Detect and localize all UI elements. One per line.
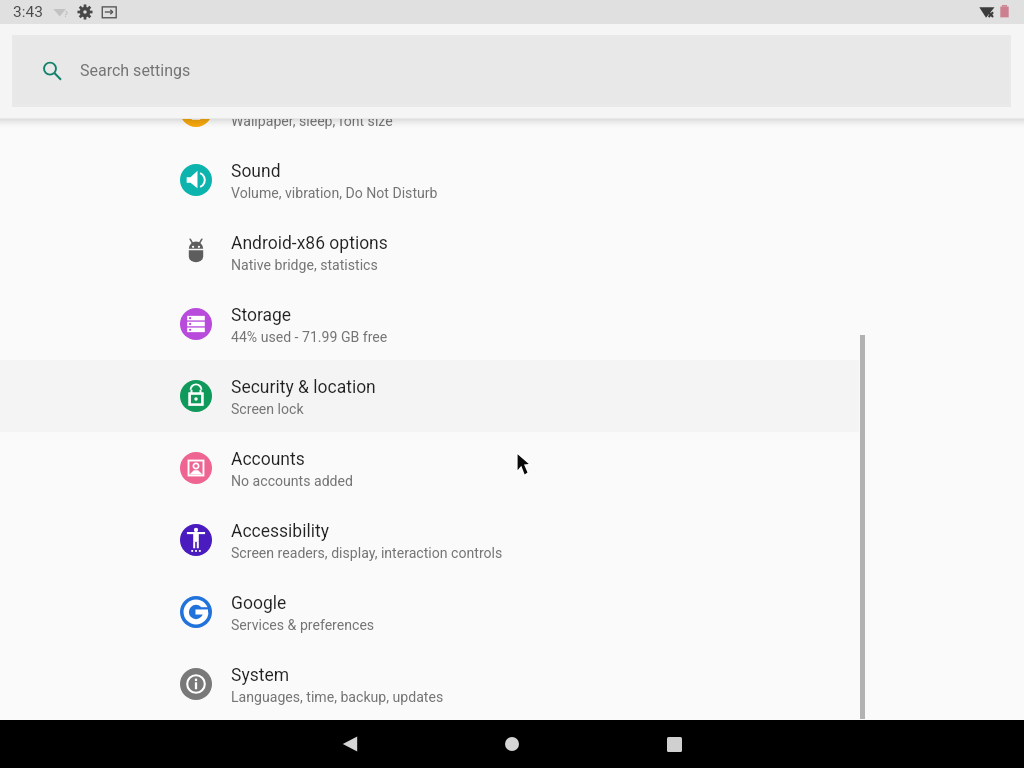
staticText: Screen readers, display, interaction con… — [231, 545, 503, 562]
staticText: Storage — [231, 305, 292, 326]
button[interactable]: Display — [0, 119, 859, 144]
button[interactable]: Accounts — [0, 432, 859, 504]
button[interactable]: Accessibility — [0, 504, 859, 576]
staticText: Accessibility — [231, 521, 329, 542]
staticText: Wallpaper, sleep, font size — [231, 119, 393, 130]
button[interactable]: Back — [326, 720, 374, 768]
staticText: Security & location — [231, 377, 376, 398]
staticText: Volume, vibration, Do Not Disturb — [231, 185, 438, 202]
button[interactable]: Recent apps — [650, 720, 698, 768]
staticText: Accounts — [231, 449, 305, 470]
button[interactable]: Android-x86 options — [0, 216, 859, 288]
staticText: Android-x86 options — [231, 233, 388, 254]
button[interactable]: Security & location — [0, 360, 859, 432]
staticText: System — [231, 665, 290, 686]
staticText: Google — [231, 593, 287, 614]
button[interactable]: Search settings — [14, 37, 1009, 104]
staticText: Search settings — [80, 61, 191, 80]
staticText: Native bridge, statistics — [231, 257, 378, 274]
button[interactable]: System — [0, 648, 859, 719]
staticText: Sound — [231, 161, 281, 182]
staticText: Screen lock — [231, 401, 304, 418]
button[interactable]: Home — [488, 720, 536, 768]
staticText: No accounts added — [231, 473, 353, 490]
staticText: Languages, time, backup, updates — [231, 689, 444, 706]
button[interactable]: Storage — [0, 288, 859, 360]
staticText: 3:43 — [13, 3, 43, 21]
button[interactable]: Google — [0, 576, 859, 648]
button[interactable]: Sound — [0, 144, 859, 216]
staticText: Services & preferences — [231, 617, 375, 634]
staticText: 44% used - 71.99 GB free — [231, 329, 388, 346]
